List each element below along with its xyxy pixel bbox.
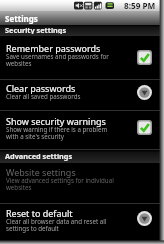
- staticText: Advanced settings: [5, 151, 73, 161]
- button[interactable]: Clear passwords: [0, 80, 164, 110]
- button[interactable]: Reset to default: [0, 204, 164, 244]
- staticText: Settings: [5, 13, 38, 24]
- button[interactable]: Website settings: [0, 163, 164, 203]
- staticText: Clear all saved passwords: [6, 92, 81, 100]
- staticText: Clear passwords: [6, 82, 76, 94]
- staticText: Show security warnings: [6, 115, 106, 127]
- button[interactable]: Show security warnings: [0, 111, 164, 149]
- staticText: Save usernames and passwords for website…: [6, 52, 109, 68]
- staticText: 8:59 PM: [124, 0, 156, 11]
- button[interactable]: Advanced settings: [0, 150, 164, 163]
- staticText: Show warning if there is a problem with …: [6, 125, 108, 141]
- staticText: View advanced settings for individual we…: [6, 176, 114, 192]
- staticText: Security settings: [5, 25, 67, 34]
- staticText: Clear all browser data and reset all set…: [6, 217, 107, 233]
- staticText: Reset to default: [6, 207, 73, 219]
- button[interactable]: Security settings: [0, 25, 164, 36]
- button[interactable]: Remember passwords: [0, 36, 164, 79]
- staticText: Remember passwords: [6, 42, 101, 54]
- staticText: Website settings: [6, 166, 76, 178]
